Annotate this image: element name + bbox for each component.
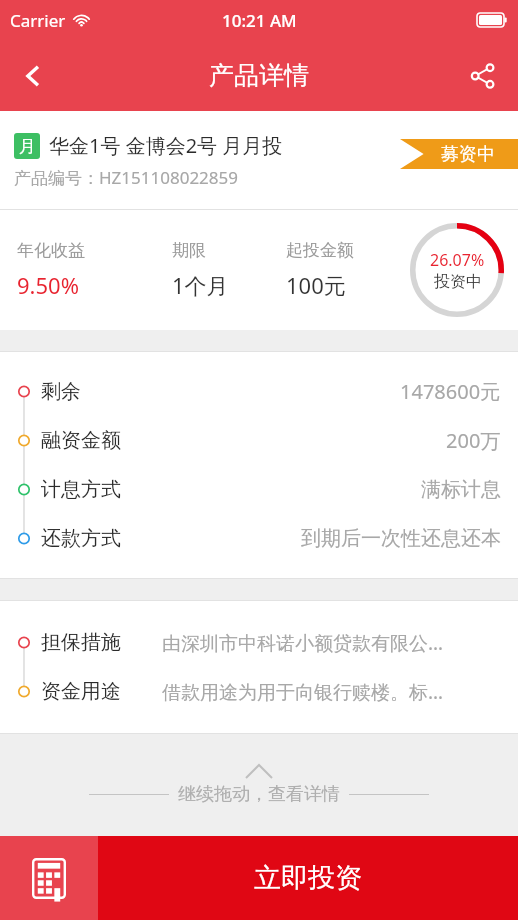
staticText: 资金用途: [41, 679, 121, 704]
staticText: 由深圳市中科诺小额贷款有限公…: [162, 630, 444, 656]
button[interactable]: Calculator: [0, 836, 98, 920]
staticText: 满标计息: [421, 477, 501, 502]
button[interactable]: 计息方式: [0, 465, 518, 514]
button[interactable]: 融资金额: [0, 416, 518, 465]
button[interactable]: 还款方式: [0, 514, 518, 563]
staticText: 10:21 AM: [222, 9, 297, 32]
staticText: 借款用途为用于向银行赎楼。标…: [162, 679, 444, 705]
staticText: 100元: [286, 270, 346, 300]
button[interactable]: Back: [8, 50, 60, 102]
staticText: 华金1号 金博会2号 月月投: [49, 132, 283, 159]
staticText: 融资金额: [41, 428, 121, 453]
staticText: 200万: [446, 427, 501, 454]
staticText: 起投金额: [286, 240, 354, 261]
button[interactable]: 资金用途: [0, 667, 518, 716]
staticText: 产品编号：HZ151108022859: [14, 166, 239, 189]
button[interactable]: 担保措施: [0, 618, 518, 667]
staticText: 1478600元: [400, 378, 501, 405]
staticText: 到期后一次性还息还本: [301, 526, 501, 551]
staticText: 还款方式: [41, 526, 121, 551]
staticText: 年化收益: [17, 240, 85, 261]
staticText: 1个月: [172, 270, 229, 300]
button[interactable]: 立即投资: [98, 836, 518, 920]
staticText: 26.07%: [430, 249, 485, 271]
staticText: Carrier: [10, 9, 66, 32]
staticText: 计息方式: [41, 477, 121, 502]
staticText: 期限: [172, 240, 206, 261]
staticText: 产品详情: [209, 60, 309, 91]
button[interactable]: 募资中: [400, 139, 518, 169]
button[interactable]: Share: [458, 51, 508, 101]
staticText: 月: [19, 136, 36, 157]
staticText: 立即投资: [254, 861, 362, 895]
staticText: 继续拖动，查看详情: [178, 783, 340, 806]
staticText: 担保措施: [41, 630, 121, 655]
staticText: 剩余: [41, 379, 81, 404]
staticText: 9.50%: [17, 270, 79, 300]
staticText: 募资中: [441, 143, 495, 166]
button[interactable]: 剩余: [0, 367, 518, 416]
staticText: 投资中: [434, 272, 482, 292]
